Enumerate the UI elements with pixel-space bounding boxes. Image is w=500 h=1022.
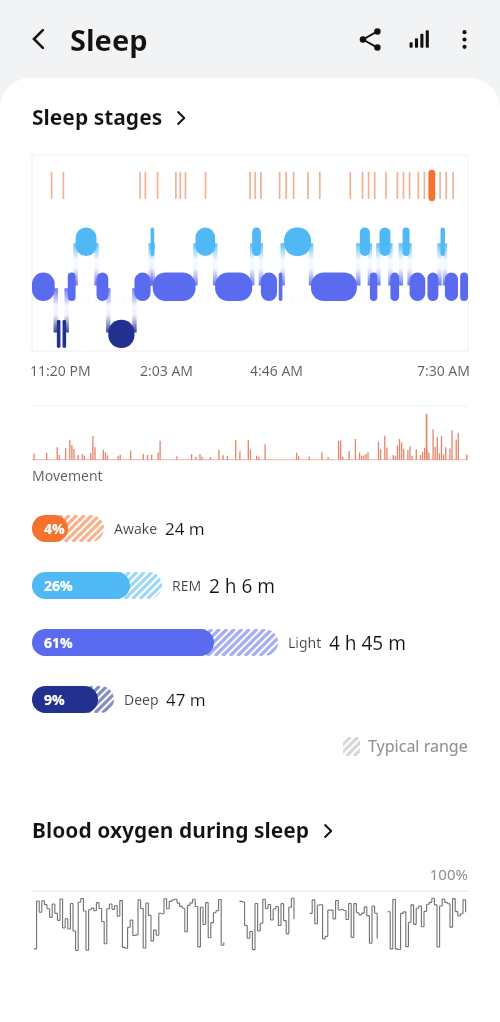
button[interactable]: 26%	[0, 572, 500, 599]
staticText: 9%	[44, 690, 65, 709]
staticText: Typical range	[368, 735, 468, 757]
button[interactable]: 4%	[0, 515, 500, 542]
staticText: 100%	[0, 864, 468, 884]
staticText: 2:03 AM	[140, 361, 250, 380]
staticText: Sleep	[70, 20, 148, 59]
button[interactable]: 61%	[0, 629, 500, 656]
staticText: Movement	[32, 466, 103, 485]
button[interactable]: Back	[16, 16, 62, 62]
button[interactable]: Blood oxygen during sleep	[0, 813, 500, 848]
button[interactable]: Share	[346, 15, 394, 63]
staticText: 4%	[44, 519, 65, 538]
staticText: 4:46 AM	[250, 361, 360, 380]
button[interactable]: Statistics	[394, 15, 442, 63]
staticText: REM	[172, 576, 202, 595]
button[interactable]: 9%	[0, 686, 500, 713]
staticText: 26%	[44, 576, 73, 595]
staticText: 4 h 45 m	[329, 630, 406, 656]
staticText: 11:20 PM	[30, 361, 140, 380]
staticText: Deep	[124, 690, 159, 709]
staticText: 47 m	[166, 688, 206, 711]
button[interactable]: Sleep stages	[0, 100, 500, 135]
staticText: Sleep stages	[32, 103, 163, 132]
staticText: Light	[288, 633, 322, 652]
staticText: 24 m	[165, 517, 205, 540]
staticText: Awake	[114, 519, 158, 538]
staticText: 7:30 AM	[360, 361, 470, 380]
staticText: Blood oxygen during sleep	[32, 816, 310, 845]
button[interactable]: More options	[442, 17, 486, 61]
staticText: 61%	[44, 633, 73, 652]
staticText: 2 h 6 m	[209, 573, 276, 599]
